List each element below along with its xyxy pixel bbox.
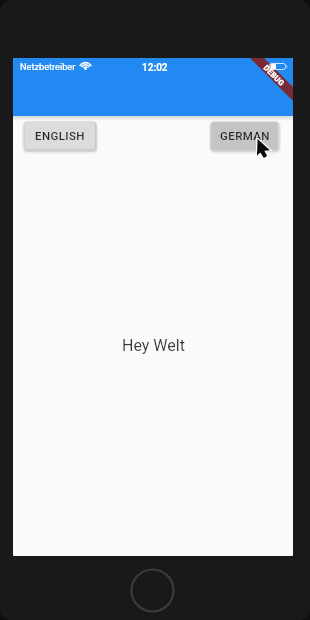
staticText: ENGLISH bbox=[35, 129, 85, 142]
button[interactable]: GERMAN bbox=[212, 122, 277, 149]
staticText: 12:02 bbox=[142, 62, 168, 74]
other: Home bbox=[130, 568, 175, 613]
staticText: Hey Welt bbox=[122, 336, 185, 355]
button[interactable]: ENGLISH bbox=[25, 122, 95, 149]
staticText: GERMAN bbox=[220, 129, 270, 142]
staticText: DEBUG bbox=[262, 63, 286, 88]
staticText: Netzbetreiber bbox=[20, 61, 76, 72]
